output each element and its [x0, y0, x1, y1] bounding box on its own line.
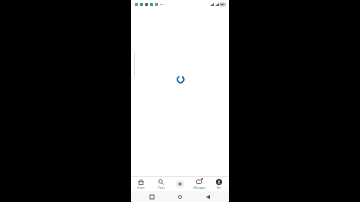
- staticText: Home: [137, 186, 145, 190]
- staticText: Me: [217, 186, 221, 190]
- staticText: Messages: [193, 186, 206, 190]
- button[interactable]: Me: [210, 177, 228, 191]
- button[interactable]: Home: [132, 177, 150, 191]
- button[interactable]: Messages: [190, 177, 208, 191]
- staticText: Parts: [158, 186, 165, 190]
- button[interactable]: Back: [201, 191, 215, 202]
- button[interactable]: Create: [171, 177, 189, 191]
- button[interactable]: Parts: [152, 177, 170, 191]
- button[interactable]: Recent apps: [145, 191, 159, 202]
- button[interactable]: Home: [173, 191, 187, 202]
